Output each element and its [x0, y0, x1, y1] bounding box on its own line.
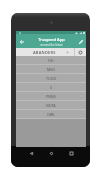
button[interactable]: Edit [75, 34, 86, 48]
button[interactable]: TUOO [16, 74, 86, 83]
staticText: X [50, 85, 53, 90]
button[interactable]: Back [26, 148, 36, 159]
button[interactable]: Home [46, 148, 56, 159]
staticText: Truspeed App [38, 37, 65, 42]
button[interactable]: NOTA [16, 101, 86, 110]
staticText: PRMS [46, 94, 56, 99]
staticText: NOTA [46, 103, 56, 108]
button[interactable]: Recent apps [66, 148, 76, 159]
staticText: M6O [47, 67, 56, 72]
staticText: TUOO [46, 76, 57, 81]
button[interactable]: Options [75, 48, 86, 56]
button[interactable]: Navigate up [16, 34, 27, 48]
button[interactable]: X [16, 83, 86, 92]
button[interactable]: Add [62, 48, 74, 56]
button[interactable]: HO [16, 56, 86, 65]
staticText: ABANDERS [33, 50, 56, 55]
staticText: OWL [47, 112, 55, 117]
button[interactable]: OWL [16, 110, 86, 119]
staticText: connect the future [40, 43, 63, 47]
button[interactable]: PRMS [16, 92, 86, 101]
staticText: HO [48, 58, 54, 63]
button[interactable]: M6O [16, 65, 86, 74]
